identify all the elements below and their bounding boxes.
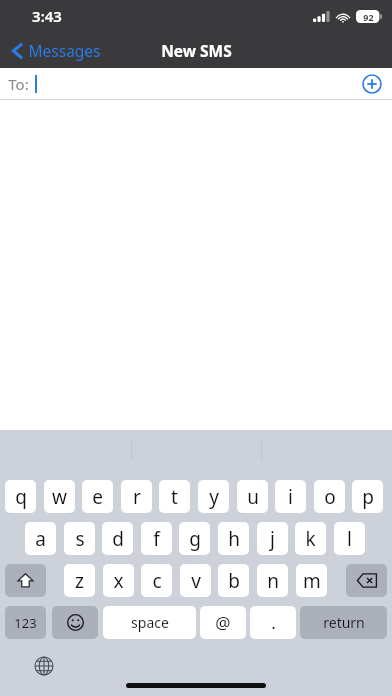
button[interactable]: t — [159, 480, 190, 513]
staticText: . — [271, 611, 276, 634]
staticText: j — [270, 526, 275, 552]
button[interactable]: g — [179, 522, 210, 555]
staticText: e — [92, 484, 103, 510]
button[interactable]: Add contact — [360, 72, 384, 96]
staticText: p — [362, 484, 374, 510]
button[interactable]: l — [334, 522, 365, 555]
staticText: b — [228, 568, 240, 594]
staticText: To: — [8, 74, 29, 94]
staticText: c — [152, 568, 162, 594]
staticText: w — [52, 484, 67, 510]
staticText: s — [75, 526, 85, 552]
button[interactable]: Shift — [5, 564, 46, 597]
staticText: y — [209, 484, 219, 510]
button[interactable]: s — [64, 522, 95, 555]
staticText: n — [267, 568, 279, 594]
button[interactable]: u — [237, 480, 268, 513]
staticText: i — [288, 484, 293, 510]
button[interactable]: a — [25, 522, 56, 555]
button[interactable]: i — [275, 480, 306, 513]
button[interactable]: Emoji — [52, 606, 98, 639]
button[interactable]: y — [198, 480, 229, 513]
staticText: a — [35, 526, 46, 552]
staticText: u — [247, 484, 259, 510]
staticText: x — [113, 568, 124, 594]
button[interactable]: j — [257, 522, 288, 555]
staticText: New SMS — [161, 40, 232, 61]
button[interactable]: Messages — [0, 36, 109, 65]
staticText: h — [228, 526, 240, 552]
staticText: m — [303, 568, 321, 594]
button[interactable]: 123 — [5, 606, 46, 639]
staticText: @ — [215, 611, 231, 634]
staticText: t — [171, 484, 178, 510]
staticText: q — [15, 484, 27, 510]
button[interactable]: f — [141, 522, 172, 555]
staticText: return — [323, 613, 365, 632]
button[interactable]: x — [103, 564, 134, 597]
button[interactable]: m — [296, 564, 327, 597]
staticText: v — [191, 568, 201, 594]
staticText: f — [153, 526, 160, 552]
button[interactable]: h — [218, 522, 249, 555]
staticText: Messages — [28, 40, 101, 61]
button[interactable]: space — [103, 606, 196, 639]
button[interactable]: n — [257, 564, 288, 597]
staticText: z — [75, 568, 84, 594]
button[interactable]: k — [295, 522, 326, 555]
staticText: 92 — [363, 11, 374, 23]
button[interactable]: d — [102, 522, 133, 555]
button[interactable]: c — [141, 564, 172, 597]
staticText: r — [133, 484, 141, 510]
button[interactable]: Delete — [346, 564, 387, 597]
button[interactable]: p — [352, 480, 383, 513]
button[interactable]: r — [121, 480, 152, 513]
staticText: k — [305, 526, 316, 552]
staticText: g — [189, 526, 201, 552]
button[interactable]: z — [64, 564, 95, 597]
staticText: d — [112, 526, 124, 552]
button[interactable]: e — [82, 480, 113, 513]
staticText: 123 — [14, 614, 37, 632]
staticText: l — [347, 526, 352, 552]
staticText: space — [131, 613, 169, 632]
button[interactable]: return — [300, 606, 387, 639]
button[interactable]: o — [314, 480, 345, 513]
staticText: 3:43 — [32, 6, 62, 26]
button[interactable]: Change keyboard — [30, 652, 58, 680]
staticText: o — [324, 484, 336, 510]
button[interactable]: v — [180, 564, 211, 597]
button[interactable]: b — [218, 564, 249, 597]
button[interactable]: . — [250, 606, 296, 639]
button[interactable]: @ — [200, 606, 246, 639]
button[interactable]: q — [5, 480, 36, 513]
button[interactable]: w — [44, 480, 75, 513]
